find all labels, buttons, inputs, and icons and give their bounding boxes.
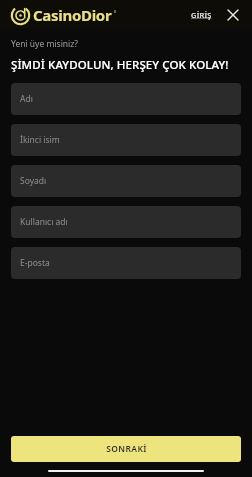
- staticText: SONRAKİ: [106, 443, 147, 455]
- button[interactable]: SONRAKİ: [11, 436, 241, 462]
- button[interactable]: E-posta: [11, 247, 241, 279]
- staticText: ŞİMDİ KAYDOLUN, HERŞEY ÇOK KOLAY!: [11, 57, 229, 73]
- button[interactable]: Soyadı: [11, 165, 241, 197]
- staticText: GİRİŞ: [191, 10, 212, 20]
- button[interactable]: Adı: [11, 83, 241, 115]
- staticText: Yeni üye misiniz?: [11, 38, 78, 50]
- button[interactable]: Kullanıcı adı: [11, 206, 241, 238]
- staticText: İkinci isim: [20, 134, 60, 146]
- staticText: Kullanıcı adı: [20, 216, 68, 228]
- button[interactable]: CasinoDior: [11, 5, 117, 25]
- button[interactable]: GİRİŞ: [188, 5, 215, 25]
- staticText: Adı: [20, 93, 33, 105]
- button[interactable]: Close: [224, 6, 242, 24]
- button[interactable]: İkinci isim: [11, 124, 241, 156]
- staticText: E-posta: [20, 257, 50, 269]
- staticText: CasinoDior: [33, 5, 112, 25]
- staticText: Soyadı: [20, 175, 47, 187]
